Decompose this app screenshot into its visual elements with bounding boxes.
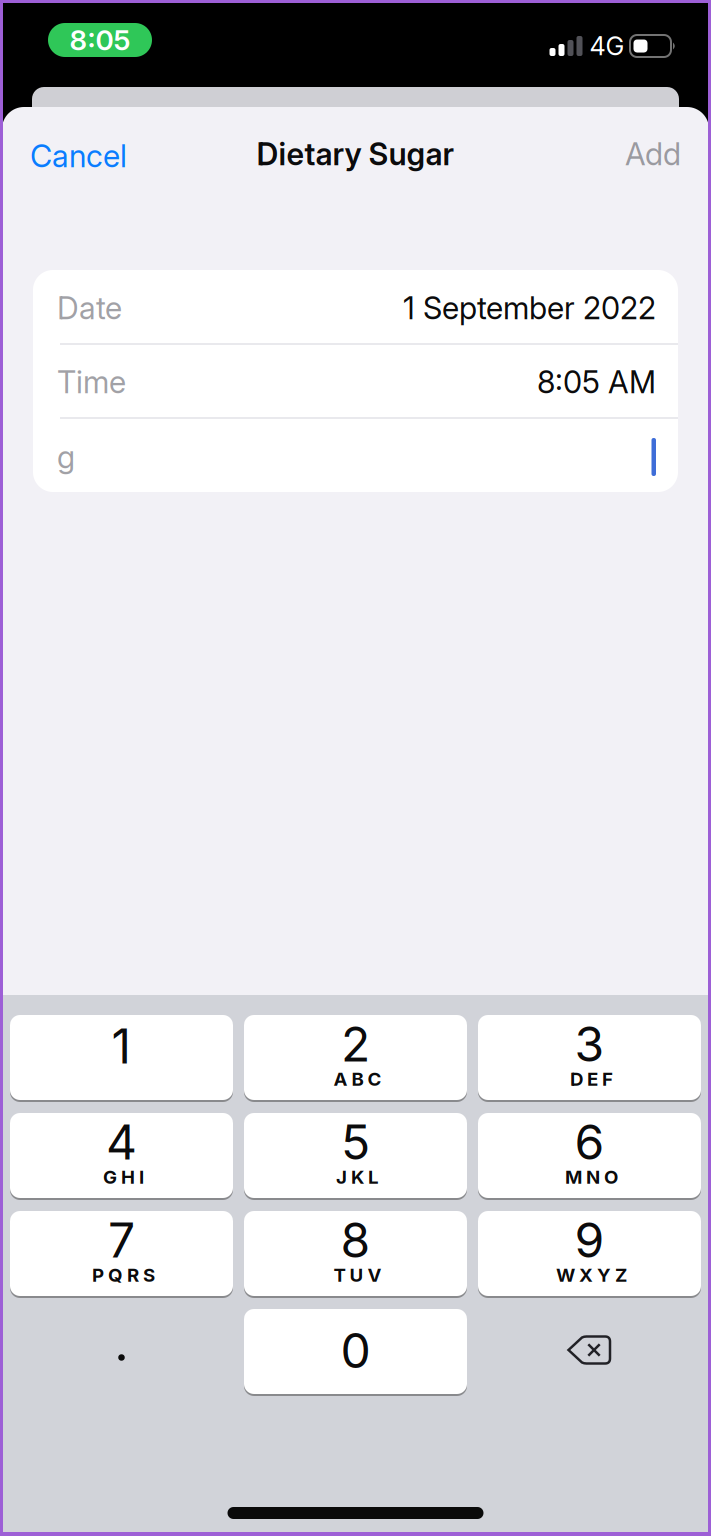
button[interactable]: 6: [478, 1113, 701, 1198]
button[interactable]: 2: [244, 1015, 467, 1100]
staticText: PQRS: [92, 1264, 155, 1286]
staticText: WXYZ: [556, 1264, 627, 1286]
staticText: MNO: [565, 1166, 618, 1188]
staticText: 5: [341, 1114, 370, 1170]
staticText: Dietary Sugar: [256, 136, 454, 172]
staticText: 4G: [589, 31, 624, 61]
staticText: JKL: [336, 1166, 379, 1188]
button[interactable]: Date: [57, 272, 656, 344]
staticText: g: [57, 439, 75, 475]
staticText: Date: [57, 290, 122, 326]
staticText: DEF: [570, 1068, 613, 1090]
staticText: 8:05: [69, 23, 130, 56]
staticText: GHI: [103, 1166, 144, 1188]
staticText: TUV: [333, 1264, 381, 1286]
staticText: Cancel: [30, 138, 127, 174]
staticText: 8:05 AM: [537, 364, 656, 400]
button[interactable]: Cancel: [30, 126, 230, 186]
button[interactable]: Add: [521, 124, 681, 184]
staticText: 3: [574, 1016, 604, 1072]
staticText: Add: [625, 136, 681, 172]
button[interactable]: 3: [478, 1015, 701, 1100]
staticText: ABC: [333, 1068, 381, 1090]
staticText: 2: [341, 1016, 370, 1072]
button[interactable]: 9: [478, 1211, 701, 1296]
button[interactable]: 4: [10, 1113, 233, 1198]
button[interactable]: Time: [57, 346, 656, 418]
button[interactable]: 8:05: [48, 23, 152, 57]
button[interactable]: [10, 1315, 233, 1400]
staticText: 4: [106, 1114, 137, 1170]
button[interactable]: g: [57, 421, 656, 493]
staticText: 6: [574, 1114, 604, 1170]
staticText: 8: [340, 1212, 370, 1268]
button[interactable]: 7: [10, 1211, 233, 1296]
button[interactable]: 5: [244, 1113, 467, 1198]
staticText: 7: [108, 1212, 135, 1268]
button[interactable]: 0: [244, 1309, 467, 1394]
button[interactable]: [478, 1307, 701, 1392]
button[interactable]: 1: [10, 1015, 233, 1100]
staticText: 1: [111, 1018, 131, 1074]
button[interactable]: 8: [244, 1211, 467, 1296]
staticText: 9: [574, 1212, 604, 1268]
staticText: 0: [340, 1322, 370, 1379]
staticText: 1 September 2022: [403, 290, 656, 326]
staticText: Time: [57, 364, 126, 400]
